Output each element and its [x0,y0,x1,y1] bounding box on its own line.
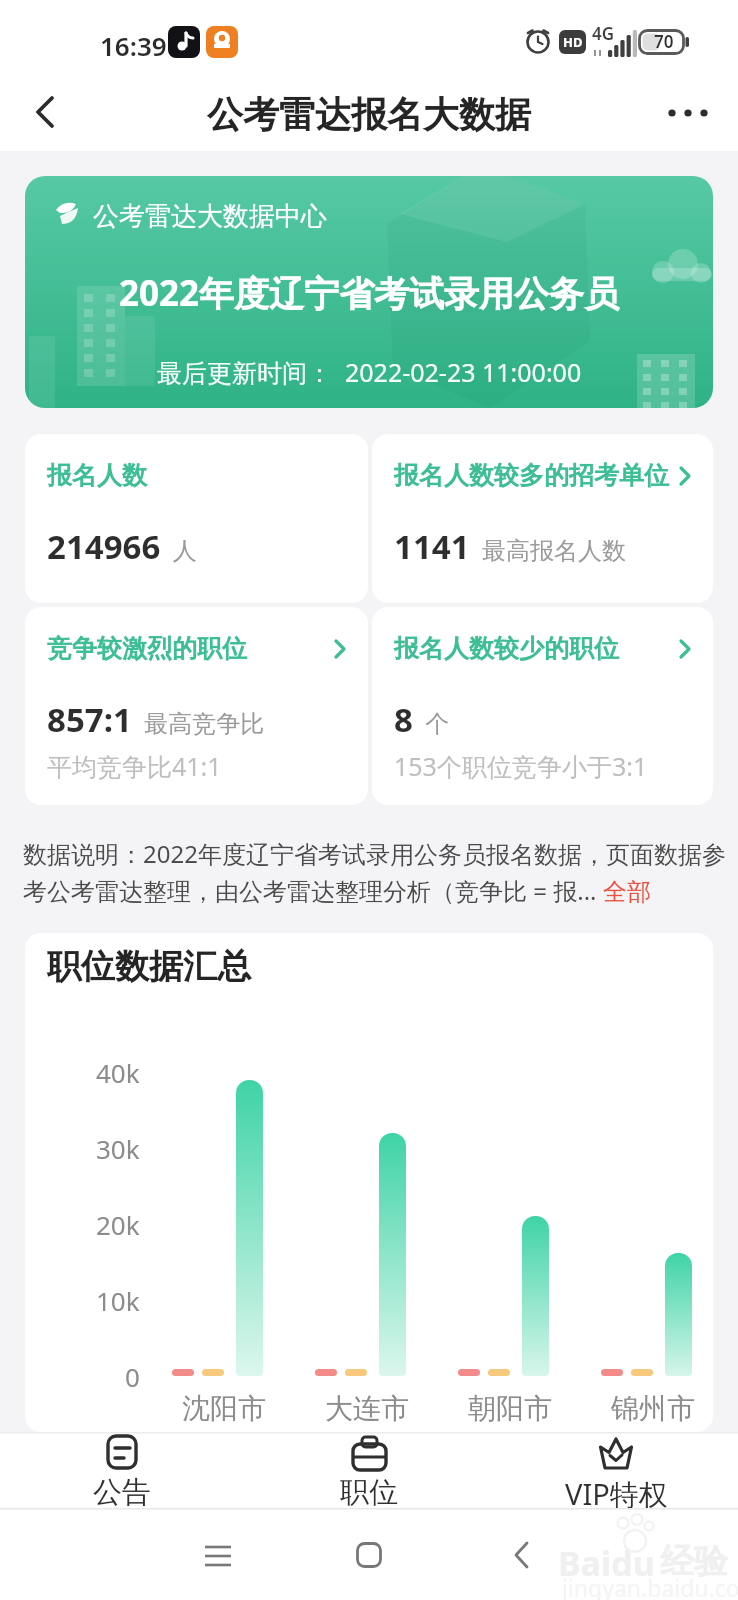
staticText: 16:39 [100,28,167,63]
staticText: 公考雷达大数据中心 [93,200,327,233]
staticText: 朝阳市 [468,1391,552,1426]
button[interactable] [204,1544,232,1570]
staticText: 30k [96,1131,140,1165]
staticText: 数据说明：2022年度辽宁省考试录用公务员报名数据，页面数据参 [23,837,726,870]
staticText: 职位数据汇总 [47,945,251,988]
staticText: 报名人数 [47,460,147,491]
button[interactable] [662,98,714,126]
staticText: 70 [654,30,674,53]
staticText: 4G [592,22,615,45]
staticText: 0 [125,1359,140,1393]
button[interactable] [356,1542,382,1568]
staticText: 2022年度辽宁省考试录用公务员 [119,269,620,317]
staticText: 8 个 [394,697,450,742]
button[interactable] [512,1541,532,1571]
staticText: 最后更新时间： 2022-02-23 11:00:00 [157,355,582,389]
staticText: jingyan.baidu.com [562,1572,738,1600]
button[interactable]: 职位 [281,1434,457,1508]
staticText: 857:1 最高竞争比 [47,697,265,742]
staticText: 职位 [340,1474,398,1508]
staticText: 大连市 [325,1391,409,1426]
staticText: VIP特权 [565,1474,668,1508]
staticText: 经验 [660,1540,728,1583]
staticText: 锦州市 [611,1391,695,1426]
button[interactable]: 报名人数 [25,434,368,603]
staticText: 公告 [93,1474,151,1508]
staticText: 考公考雷达整理，由公考雷达整理分析（竞争比 = 报... 全部 [23,874,651,907]
staticText: 214966 人 [47,524,197,569]
staticText: 40k [96,1055,140,1089]
staticText: 报名人数较少的职位 [394,633,619,664]
staticText: 竞争较激烈的职位 [47,633,247,664]
button[interactable]: 考公考雷达整理，由公考雷达整理分析（竞争比 = 报... 全部 [23,874,651,907]
staticText: 20k [96,1207,140,1241]
staticText: 沈阳市 [182,1391,266,1426]
staticText: 公考雷达报名大数据 [207,92,531,137]
staticText: 报名人数较多的招考单位 [394,460,669,491]
staticText: Baidu [558,1540,655,1586]
staticText: HD [563,33,583,51]
button[interactable]: 公告 [34,1434,210,1508]
staticText: 153个职位竞争小于3:1 [394,749,648,783]
button[interactable] [30,95,62,127]
staticText: 10k [96,1283,140,1317]
button[interactable]: VIP特权 [528,1434,704,1508]
button[interactable]: 报名人数较少的职位 [372,607,713,805]
staticText: 平均竞争比41:1 [47,749,222,783]
staticText: 1141 最高报名人数 [394,524,626,569]
button[interactable]: 公考雷达大数据中心 [25,176,713,408]
button[interactable]: 报名人数较多的招考单位 [372,434,713,603]
button[interactable]: 竞争较激烈的职位 [25,607,368,805]
